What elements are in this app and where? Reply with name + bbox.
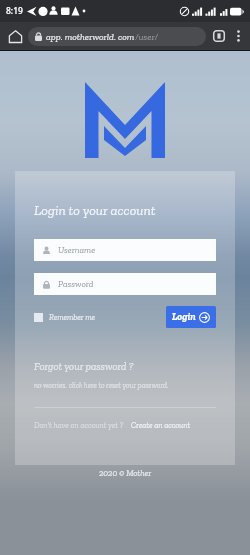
staticText: 8:19 [6, 5, 23, 17]
button[interactable]: Create an account [131, 420, 191, 430]
button[interactable]: Home [4, 25, 26, 47]
staticText: 2020 © Mother [99, 468, 152, 478]
staticText: Login to your account [34, 202, 156, 219]
staticText: Don't have an account yet ? [34, 420, 124, 430]
staticText: Login [172, 311, 196, 323]
staticText: Username [58, 245, 96, 256]
button[interactable]: Forgot your password ? [34, 360, 134, 373]
button[interactable]: Address bar [28, 27, 206, 46]
staticText: /user/ [135, 31, 159, 42]
button[interactable]: Remember me [34, 312, 96, 322]
button[interactable]: More options [229, 27, 247, 45]
button[interactable]: Tabs [209, 26, 229, 46]
staticText: app. motherworld. com [46, 31, 135, 42]
staticText: no worries. click here to reset your pas… [34, 381, 169, 390]
staticText: Remember me [49, 312, 96, 322]
button[interactable]: Login [166, 306, 216, 328]
button[interactable]: Password [34, 273, 216, 295]
staticText: Password [58, 279, 94, 290]
button[interactable]: Username [34, 239, 216, 261]
